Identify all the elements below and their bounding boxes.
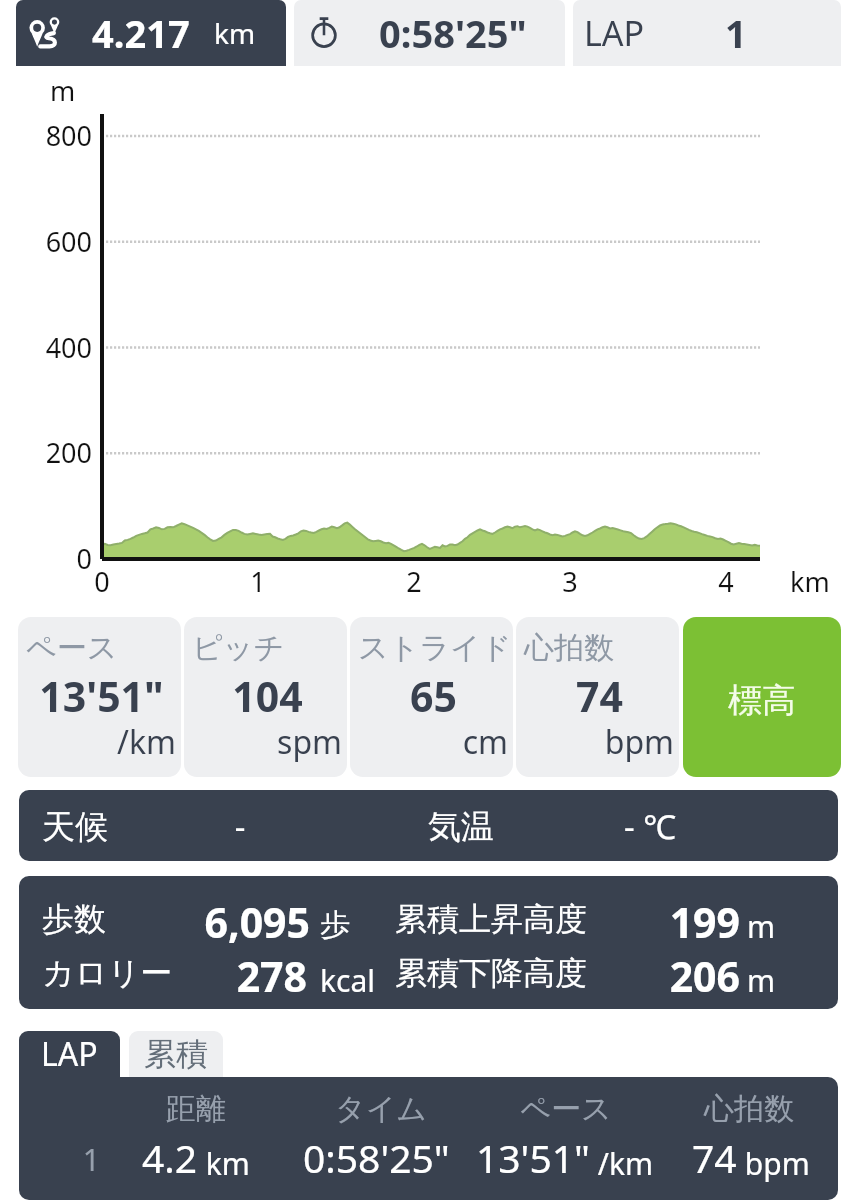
- button[interactable]: Time: [294, 0, 565, 66]
- staticText: km: [214, 14, 256, 52]
- staticText: 74: [692, 1131, 737, 1184]
- staticText: 13'51": [20, 668, 181, 724]
- staticText: 累積下降高度: [395, 953, 587, 993]
- staticText: bpm: [737, 1143, 810, 1184]
- staticText: 4.2: [142, 1131, 198, 1184]
- staticText: m: [50, 72, 76, 109]
- staticText: 心拍数: [524, 629, 679, 667]
- staticText: 1: [58, 1139, 100, 1180]
- button[interactable]: 心拍数: [516, 617, 679, 777]
- staticText: カロリー: [42, 953, 173, 993]
- staticText: -: [195, 804, 285, 849]
- other: Route: [28, 14, 64, 50]
- staticText: 104: [186, 668, 347, 724]
- staticText: 800: [8, 117, 92, 154]
- staticText: 3: [540, 563, 600, 600]
- staticText: 距離: [116, 1090, 276, 1128]
- staticText: 歩: [320, 906, 350, 944]
- staticText: 6,095: [90, 894, 310, 950]
- button[interactable]: 歩数: [19, 876, 838, 1009]
- staticText: m: [747, 906, 776, 947]
- staticText: 気温: [428, 806, 494, 848]
- staticText: /km: [18, 720, 176, 764]
- staticText: ストライド: [358, 629, 513, 667]
- staticText: spm: [184, 720, 342, 764]
- staticText: 天候: [42, 806, 108, 848]
- staticText: 600: [8, 223, 92, 260]
- button[interactable]: ストライド: [350, 617, 513, 777]
- staticText: bpm: [516, 720, 674, 764]
- staticText: 206: [520, 948, 740, 1004]
- staticText: 1: [228, 563, 288, 600]
- staticText: 標高: [728, 679, 796, 722]
- button[interactable]: 標高: [683, 617, 841, 777]
- staticText: m: [747, 960, 776, 1001]
- staticText: 0: [8, 540, 92, 577]
- staticText: タイム: [301, 1090, 461, 1128]
- staticText: 65: [352, 668, 513, 724]
- staticText: 2: [384, 563, 444, 600]
- staticText: 0:58'25": [379, 7, 527, 59]
- staticText: 心拍数: [669, 1090, 829, 1128]
- other: Time: [308, 16, 340, 48]
- staticText: 0:58'25": [303, 1131, 450, 1184]
- staticText: 278: [87, 948, 307, 1004]
- button[interactable]: ペース: [18, 617, 181, 777]
- button[interactable]: LAP: [19, 1031, 120, 1077]
- staticText: km: [198, 1143, 250, 1184]
- staticText: 13'51": [476, 1131, 590, 1184]
- staticText: 400: [8, 329, 92, 366]
- staticText: 歩数: [42, 899, 106, 939]
- staticText: LAP: [584, 10, 645, 56]
- staticText: cm: [350, 720, 508, 764]
- staticText: 74: [518, 668, 679, 724]
- button[interactable]: Route: [16, 0, 286, 66]
- staticText: km: [790, 563, 830, 600]
- staticText: ペース: [26, 629, 181, 667]
- staticText: ピッチ: [192, 629, 347, 667]
- button[interactable]: 天候: [19, 790, 838, 861]
- staticText: 199: [520, 894, 740, 950]
- staticText: 4: [696, 563, 756, 600]
- staticText: 4.217: [92, 7, 190, 59]
- staticText: LAP: [41, 1032, 98, 1076]
- staticText: 1: [725, 7, 747, 59]
- staticText: kcal: [320, 960, 375, 1001]
- staticText: 累積上昇高度: [395, 899, 587, 939]
- staticText: 200: [8, 434, 92, 471]
- button[interactable]: ピッチ: [184, 617, 347, 777]
- staticText: /km: [590, 1143, 654, 1184]
- staticText: 0: [72, 563, 132, 600]
- staticText: ペース: [486, 1090, 646, 1128]
- button[interactable]: 累積: [129, 1031, 223, 1077]
- staticText: 累積: [144, 1034, 208, 1074]
- button[interactable]: LAP: [573, 0, 841, 66]
- staticText: - ℃: [605, 804, 695, 849]
